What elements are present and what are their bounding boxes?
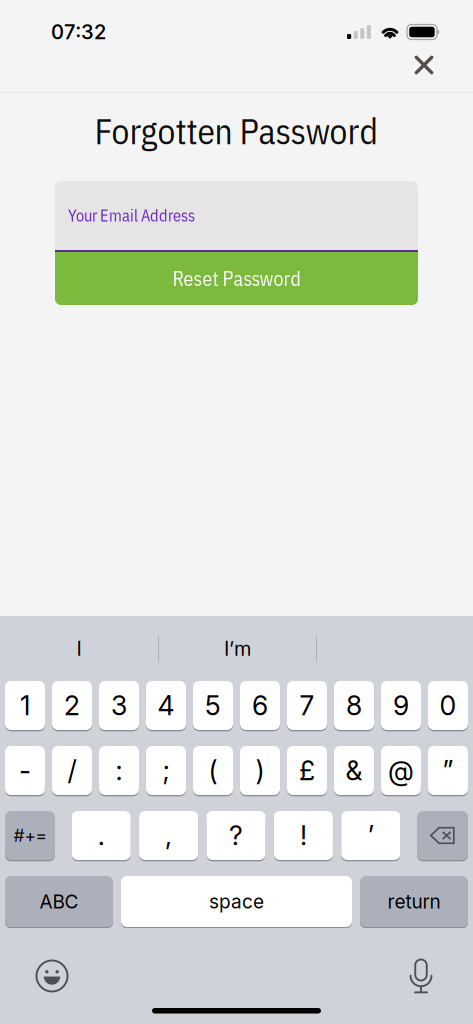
button[interactable]: 2 [52, 681, 92, 731]
button[interactable]: ? [206, 811, 265, 861]
staticText: , [165, 819, 172, 852]
staticText: 3 [111, 689, 127, 722]
staticText: I’m [224, 636, 251, 661]
button[interactable]: , [139, 811, 198, 861]
staticText: #+= [13, 825, 46, 846]
staticText: 6 [252, 689, 268, 722]
staticText: ; [162, 754, 169, 787]
staticText: £ [299, 754, 315, 787]
button[interactable]: 7 [287, 681, 327, 731]
button[interactable]: space [121, 876, 352, 928]
button[interactable]: return [360, 876, 468, 928]
button[interactable]: : [99, 746, 139, 796]
button[interactable]: Close [402, 43, 446, 87]
button[interactable]: #+= [5, 811, 55, 861]
staticText: space [209, 890, 264, 913]
staticText: 0 [439, 689, 456, 722]
staticText: 8 [346, 689, 362, 722]
staticText: 7 [299, 689, 314, 722]
staticText: ( [208, 754, 217, 787]
button[interactable]: ( [193, 746, 233, 796]
staticText: . [98, 819, 105, 852]
staticText: @ [388, 754, 414, 787]
staticText: & [345, 754, 362, 787]
button[interactable]: I’m [159, 616, 316, 681]
button[interactable]: 1 [5, 681, 45, 731]
staticText: ’ [368, 819, 374, 852]
button[interactable]: ; [146, 746, 186, 796]
staticText: 4 [157, 689, 174, 722]
button[interactable]: Reset Password [55, 252, 418, 305]
button[interactable]: ” [428, 746, 468, 796]
button[interactable]: & [334, 746, 374, 796]
button[interactable]: Delete [417, 811, 468, 861]
staticText: 1 [20, 689, 30, 722]
staticText: Forgotten Password [94, 108, 378, 154]
button[interactable]: ABC [5, 876, 113, 928]
staticText: ! [300, 819, 307, 852]
staticText: : [115, 754, 122, 787]
button[interactable]: ! [274, 811, 333, 861]
staticText: - [19, 754, 31, 787]
staticText: ) [255, 754, 264, 787]
button[interactable]: 5 [193, 681, 233, 731]
button[interactable]: - [5, 746, 45, 796]
button[interactable]: ’ [341, 811, 400, 861]
staticText: I [76, 636, 81, 661]
staticText: 5 [205, 689, 221, 722]
button[interactable]: / [52, 746, 92, 796]
staticText: ” [442, 754, 453, 787]
button[interactable]: @ [381, 746, 421, 796]
staticText: ABC [39, 890, 78, 913]
button[interactable]: 6 [240, 681, 280, 731]
button[interactable]: . [72, 811, 131, 861]
staticText: / [67, 754, 76, 787]
staticText: 07:32 [51, 20, 106, 44]
button[interactable]: ) [240, 746, 280, 796]
button[interactable]: 9 [381, 681, 421, 731]
button[interactable]: I [0, 616, 158, 681]
button[interactable]: 0 [428, 681, 468, 731]
button[interactable]: £ [287, 746, 327, 796]
button[interactable]: 4 [146, 681, 186, 731]
button[interactable]: 8 [334, 681, 374, 731]
staticText: Your Email Address [68, 205, 195, 226]
button[interactable]: 3 [99, 681, 139, 731]
button[interactable]: Dictation [397, 952, 445, 1000]
staticText: return [387, 890, 440, 913]
staticText: Reset Password [172, 266, 300, 291]
button[interactable]: Emoji keyboard [28, 952, 76, 1000]
staticText: 9 [393, 689, 409, 722]
staticText: 2 [64, 689, 80, 722]
staticText: ? [229, 819, 243, 852]
